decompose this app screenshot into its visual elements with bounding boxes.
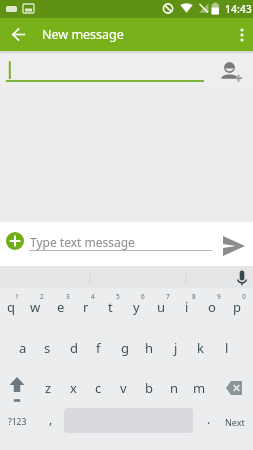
button[interactable]: b bbox=[136, 373, 161, 403]
staticText: e bbox=[57, 298, 65, 316]
staticText: f bbox=[96, 339, 101, 357]
staticText: 14:43 bbox=[225, 2, 252, 16]
staticText: n bbox=[170, 379, 179, 397]
button[interactable] bbox=[6, 232, 24, 250]
staticText: Next bbox=[225, 416, 245, 428]
button[interactable]: k bbox=[188, 333, 213, 363]
staticText: t bbox=[108, 298, 113, 316]
button[interactable] bbox=[2, 373, 32, 403]
button[interactable]: m bbox=[187, 373, 212, 403]
button[interactable]: v bbox=[111, 373, 136, 403]
staticText: p bbox=[233, 298, 241, 316]
staticText: b bbox=[145, 379, 153, 397]
button[interactable]: n bbox=[162, 373, 187, 403]
staticText: 6 bbox=[141, 292, 145, 301]
button[interactable]: c bbox=[86, 373, 111, 403]
staticText: . bbox=[207, 411, 211, 427]
staticText: a bbox=[19, 339, 27, 357]
staticText: 1 bbox=[15, 292, 19, 301]
button[interactable]: ?123 bbox=[0, 407, 34, 437]
staticText: 7 bbox=[166, 292, 170, 301]
staticText: 8 bbox=[192, 292, 196, 301]
staticText: m bbox=[193, 379, 206, 397]
staticText: s bbox=[44, 339, 51, 357]
button[interactable]: Next bbox=[218, 407, 252, 437]
staticText: o bbox=[208, 298, 216, 316]
staticText: j bbox=[174, 339, 178, 357]
staticText: New message bbox=[42, 26, 124, 43]
staticText: h bbox=[145, 339, 154, 357]
button[interactable]: f bbox=[86, 333, 111, 363]
button[interactable]: h bbox=[137, 333, 162, 363]
button[interactable]: o bbox=[199, 292, 224, 322]
button[interactable]: q bbox=[0, 292, 23, 322]
button[interactable]: z bbox=[36, 373, 61, 403]
button[interactable]: j bbox=[163, 333, 188, 363]
button[interactable]: t bbox=[98, 292, 123, 322]
button[interactable] bbox=[219, 52, 253, 86]
button[interactable]: d bbox=[61, 333, 86, 363]
staticText: 9 bbox=[217, 292, 221, 301]
button[interactable] bbox=[6, 22, 30, 46]
button[interactable] bbox=[231, 266, 253, 288]
button[interactable]: u bbox=[149, 292, 174, 322]
staticText: l bbox=[225, 339, 229, 357]
button[interactable] bbox=[219, 232, 249, 262]
staticText: c bbox=[95, 379, 102, 397]
staticText: 5 bbox=[116, 292, 120, 301]
staticText: u bbox=[157, 298, 166, 316]
staticText: r bbox=[83, 298, 89, 316]
button[interactable]: i bbox=[174, 292, 199, 322]
staticText: Type text message bbox=[30, 234, 135, 250]
button[interactable]: g bbox=[112, 333, 137, 363]
staticText: q bbox=[7, 298, 15, 316]
button[interactable] bbox=[220, 373, 250, 403]
button[interactable]: a bbox=[10, 333, 35, 363]
button[interactable]: l bbox=[214, 333, 239, 363]
staticText: w bbox=[30, 298, 41, 316]
button[interactable]: e bbox=[48, 292, 73, 322]
staticText: k bbox=[197, 339, 204, 357]
staticText: 3 bbox=[66, 292, 70, 301]
staticText: d bbox=[70, 339, 78, 357]
staticText: 0 bbox=[242, 292, 246, 301]
button[interactable]: w bbox=[23, 292, 48, 322]
staticText: 2 bbox=[40, 292, 44, 301]
staticText: i bbox=[185, 298, 189, 316]
staticText: x bbox=[70, 379, 77, 397]
staticText: 4 bbox=[91, 292, 95, 301]
button[interactable]: . bbox=[196, 404, 221, 434]
staticText: v bbox=[120, 379, 127, 397]
button[interactable]: r bbox=[73, 292, 98, 322]
button[interactable]: x bbox=[61, 373, 86, 403]
staticText: g bbox=[121, 339, 129, 357]
staticText: , bbox=[49, 411, 53, 427]
button[interactable] bbox=[229, 23, 253, 47]
button[interactable]: Type text message bbox=[30, 222, 208, 266]
staticText: ?123 bbox=[8, 416, 27, 428]
button[interactable]: , bbox=[38, 404, 63, 434]
button[interactable]: s bbox=[35, 333, 60, 363]
button[interactable]: p bbox=[224, 292, 249, 322]
staticText: z bbox=[45, 379, 52, 397]
button[interactable]: y bbox=[124, 292, 149, 322]
staticText: y bbox=[133, 298, 140, 316]
